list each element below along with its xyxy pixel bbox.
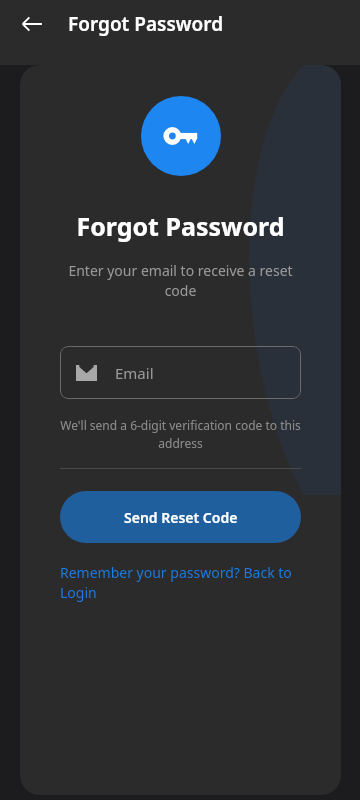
button[interactable]: Email — [60, 346, 301, 399]
button[interactable]: Remember your password? Back to Login — [60, 563, 301, 602]
button[interactable]: Send Reset Code — [60, 491, 301, 543]
staticText: Forgot Password — [68, 11, 224, 37]
staticText: Remember your password? Back to Login — [60, 563, 301, 602]
staticText: Send Reset Code — [124, 508, 238, 527]
button[interactable]: Back — [8, 0, 56, 48]
staticText: Enter your email to receive a reset code — [60, 261, 301, 301]
staticText: We'll send a 6-digit verification code t… — [60, 417, 301, 452]
staticText: Forgot Password — [76, 209, 285, 243]
staticText: Email — [115, 363, 154, 383]
